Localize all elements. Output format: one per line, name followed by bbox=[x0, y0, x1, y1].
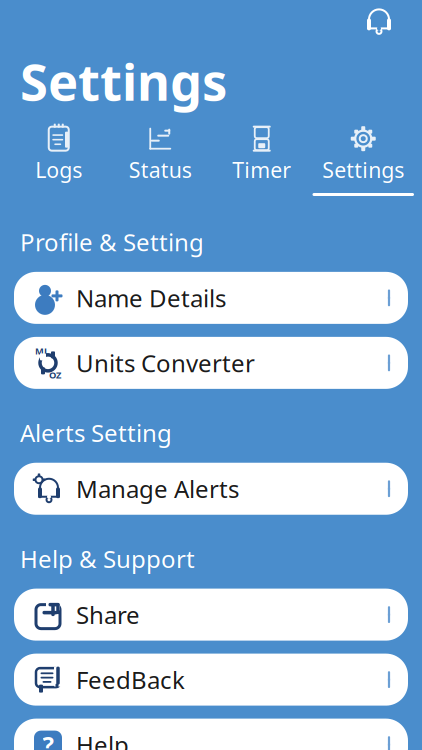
staticText: Alerts Setting bbox=[20, 417, 172, 449]
staticText: Help & Support bbox=[20, 543, 195, 575]
staticText: Profile & Setting bbox=[20, 226, 204, 258]
button[interactable]: FeedBack bbox=[14, 654, 408, 706]
staticText: Units Converter bbox=[76, 347, 255, 379]
button[interactable]: Notifications bbox=[354, 1, 404, 41]
staticText: Manage Alerts bbox=[76, 473, 239, 505]
staticText: ? bbox=[42, 729, 53, 750]
button[interactable]: Manage Alerts bbox=[14, 463, 408, 515]
staticText: Share bbox=[76, 599, 140, 631]
staticText: Settings bbox=[322, 156, 404, 184]
staticText: FeedBack bbox=[76, 664, 185, 696]
staticText: Timer bbox=[232, 156, 291, 184]
button[interactable]: Timer bbox=[211, 125, 312, 196]
button[interactable]: Name Details bbox=[14, 272, 408, 324]
staticText: ML bbox=[35, 345, 49, 357]
staticText: Help bbox=[76, 729, 129, 750]
button[interactable]: Logs bbox=[8, 125, 109, 196]
button[interactable]: Share bbox=[14, 589, 408, 641]
staticText: Name Details bbox=[76, 282, 226, 314]
staticText: Status bbox=[129, 156, 192, 184]
button[interactable]: ? bbox=[14, 719, 408, 750]
button[interactable]: Status bbox=[109, 125, 211, 196]
staticText: OZ bbox=[49, 369, 61, 381]
staticText: Settings bbox=[20, 47, 227, 115]
button[interactable]: ML bbox=[14, 337, 408, 389]
staticText: Logs bbox=[35, 156, 82, 184]
button[interactable]: Settings bbox=[312, 125, 414, 196]
